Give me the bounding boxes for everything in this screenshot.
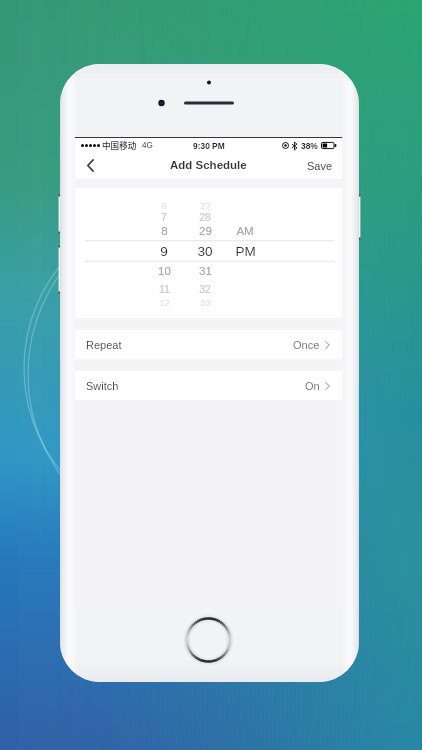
button[interactable]: Repeat <box>75 330 342 359</box>
staticText: AM <box>236 225 254 238</box>
staticText: Repeat <box>86 339 122 351</box>
staticText: 32 <box>199 283 211 295</box>
staticText: On <box>305 380 320 392</box>
button[interactable]: Switch <box>75 371 342 400</box>
staticText: Add Schedule <box>170 159 247 172</box>
staticText: 29 <box>199 225 212 238</box>
staticText: Save <box>307 160 333 172</box>
staticText: 中国移动 <box>102 139 137 151</box>
staticText: 38% <box>301 141 318 150</box>
staticText: 9 <box>160 244 168 259</box>
button[interactable]: Back <box>75 152 105 179</box>
staticText: 10 <box>158 265 171 278</box>
staticText: 9:30 PM <box>193 141 225 150</box>
button[interactable]: Save <box>298 154 342 178</box>
staticText: 12 <box>159 297 170 308</box>
staticText: 8 <box>161 225 168 238</box>
staticText: 7 <box>161 211 167 223</box>
staticText: PM <box>235 244 256 259</box>
staticText: 28 <box>199 211 211 223</box>
staticText: Switch <box>86 380 119 392</box>
staticText: 11 <box>159 283 170 295</box>
staticText: 27 <box>200 200 211 211</box>
staticText: 4G <box>142 141 153 150</box>
staticText: 6 <box>161 200 167 211</box>
staticText: 30 <box>197 244 213 259</box>
staticText: Once <box>293 339 320 351</box>
staticText: 31 <box>199 265 212 278</box>
staticText: 33 <box>200 297 211 308</box>
